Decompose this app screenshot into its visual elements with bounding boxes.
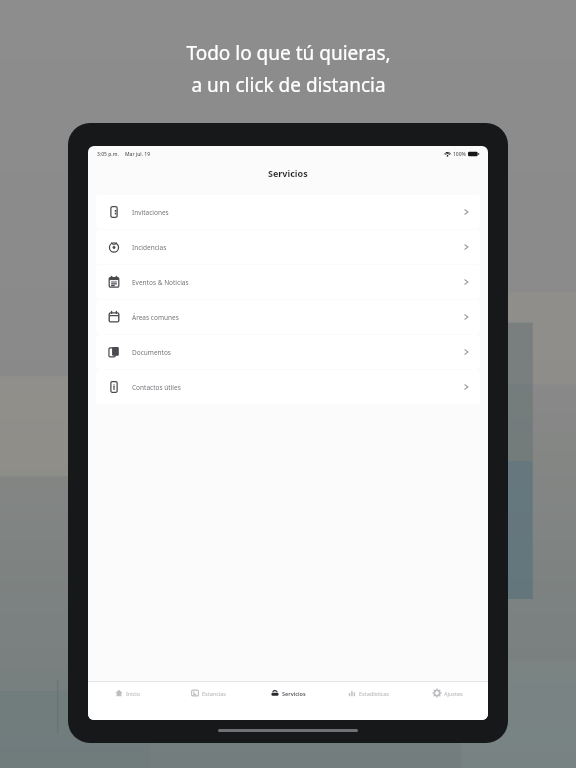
staticText: Incidencias	[132, 243, 167, 252]
button[interactable]: gear	[408, 682, 488, 704]
other: rooms	[191, 689, 199, 697]
staticText: Eventos & Noticias	[132, 278, 189, 287]
button[interactable]: Invitaciones	[96, 195, 480, 229]
other: gear	[433, 689, 441, 697]
staticText: Mar jul. 19	[125, 151, 151, 158]
other: home	[115, 689, 123, 697]
button[interactable]: Áreas comunes	[96, 300, 480, 334]
staticText: Servicios	[268, 167, 308, 179]
staticText: Estancias	[202, 690, 226, 697]
other: stats	[348, 689, 356, 697]
staticText: Contactos útiles	[132, 383, 181, 392]
staticText: Áreas comunes	[132, 313, 179, 322]
staticText: Inicio	[126, 690, 141, 697]
button[interactable]: rooms	[168, 682, 248, 704]
staticText: Invitaciones	[132, 208, 169, 217]
button[interactable]: Contactos útiles	[96, 370, 480, 404]
staticText: 100%	[453, 151, 466, 158]
button[interactable]: Eventos & Noticias	[96, 265, 480, 299]
staticText: a un click de distancia	[191, 72, 386, 98]
other: serv	[271, 689, 279, 697]
staticText: Servicios	[282, 690, 306, 697]
button[interactable]: home	[88, 682, 168, 704]
staticText: Todo lo que tú quieras,	[186, 40, 391, 66]
button[interactable]: Incidencias	[96, 230, 480, 264]
button[interactable]: Documentos	[96, 335, 480, 369]
button[interactable]: serv	[248, 682, 328, 704]
staticText: Estadísticas	[359, 690, 389, 697]
staticText: Ajustes	[444, 690, 463, 697]
staticText: Documentos	[132, 348, 171, 357]
staticText: 3:05 p.m.	[97, 151, 119, 158]
button[interactable]: stats	[328, 682, 408, 704]
